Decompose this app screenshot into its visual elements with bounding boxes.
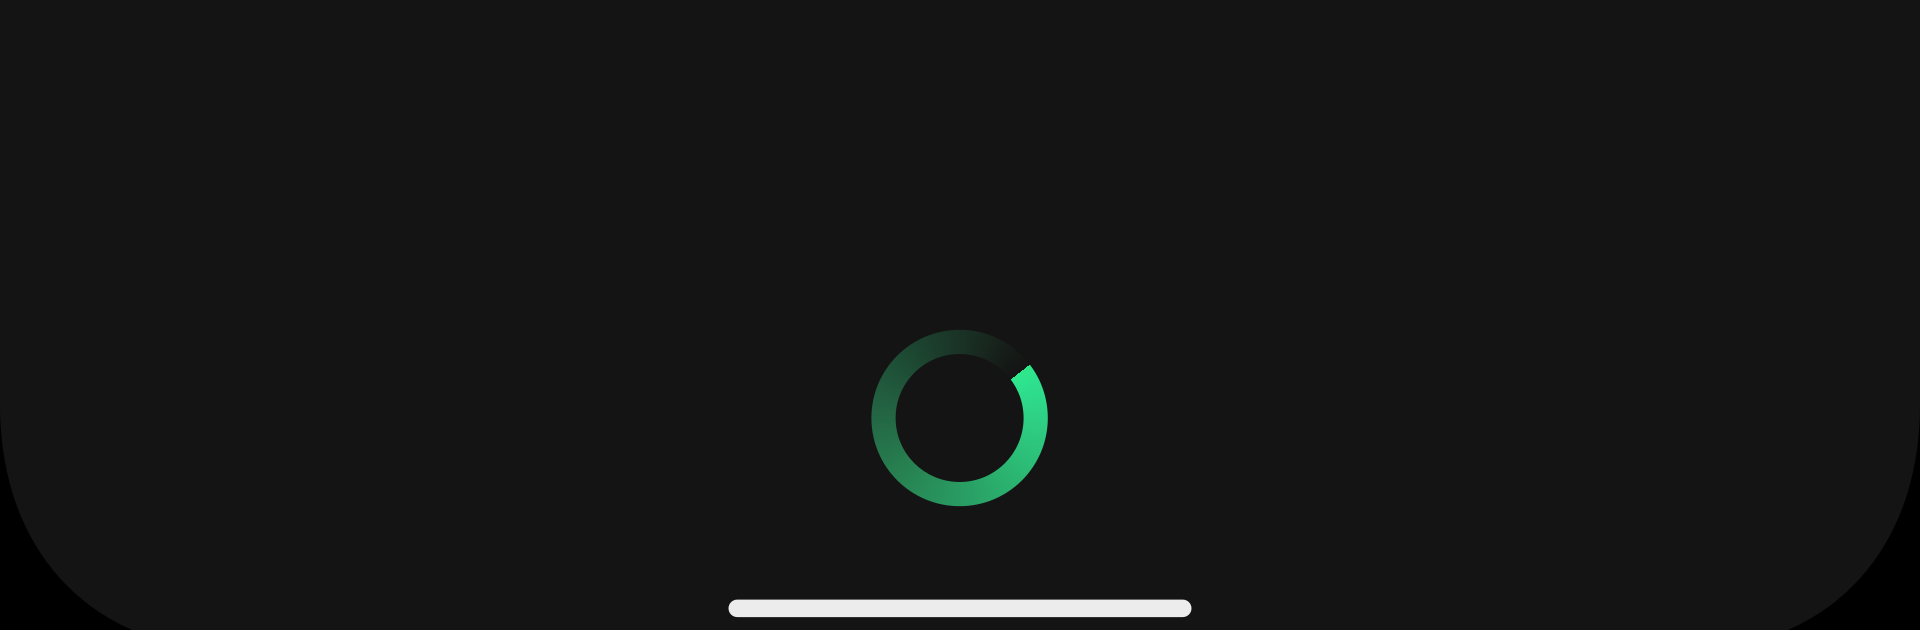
group: Loading	[871, 330, 1048, 506]
